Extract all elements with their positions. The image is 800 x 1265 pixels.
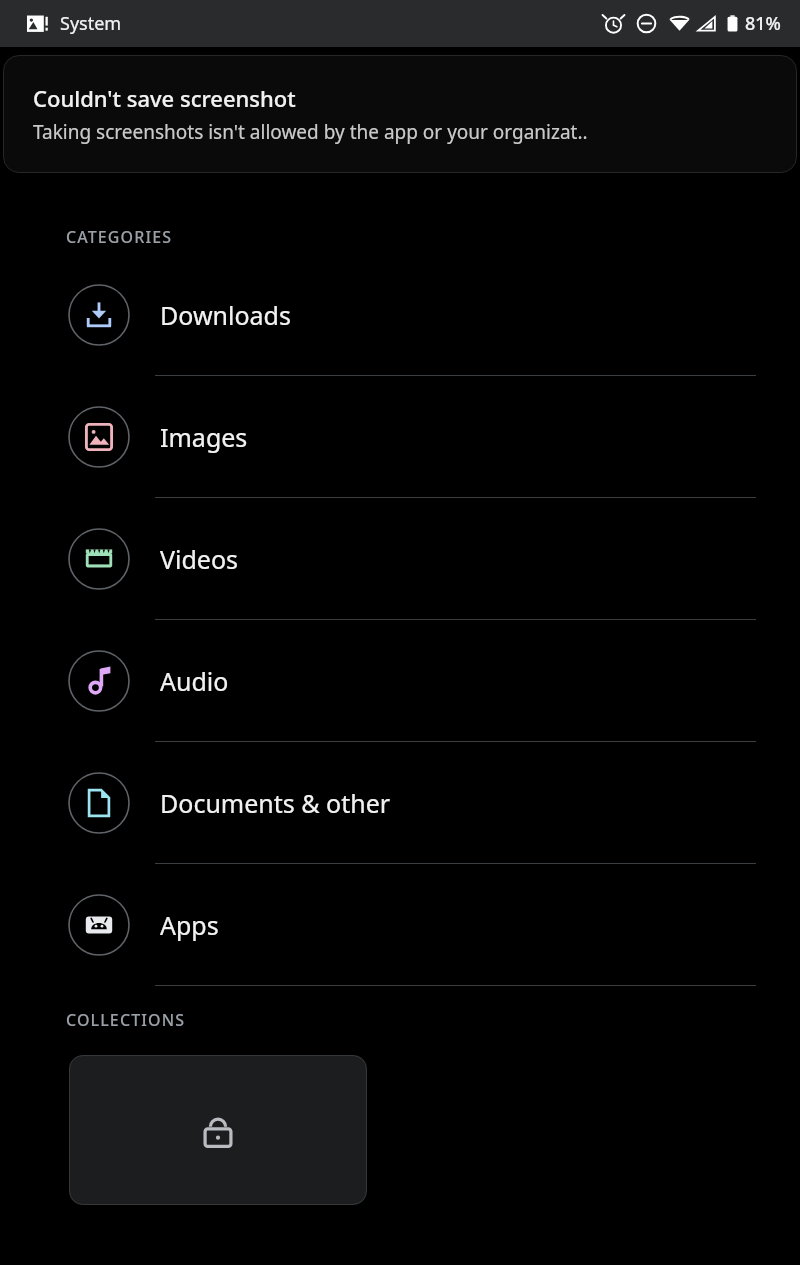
staticText: Downloads (160, 298, 291, 332)
button[interactable]: Apps (0, 864, 800, 986)
button[interactable]: Audio (0, 620, 800, 742)
staticText: Videos (160, 542, 239, 576)
staticText: System (60, 11, 122, 36)
button[interactable]: Images (0, 376, 800, 498)
button[interactable]: Safe folder, locked (69, 1055, 367, 1205)
staticText: CATEGORIES (66, 226, 173, 248)
button[interactable]: Videos (0, 498, 800, 620)
staticText: 81% (745, 11, 781, 36)
staticText: Apps (160, 908, 219, 942)
staticText: Couldn't save screenshot (33, 83, 296, 113)
button[interactable]: Documents & other (0, 742, 800, 864)
button[interactable]: Couldn't save screenshot (3, 55, 797, 173)
staticText: COLLECTIONS (66, 1009, 186, 1031)
staticText: Images (160, 420, 248, 454)
staticText: Taking screenshots isn't allowed by the … (33, 119, 588, 145)
staticText: Audio (160, 664, 229, 698)
staticText: Documents & other (160, 786, 391, 820)
button[interactable]: Downloads (0, 254, 800, 376)
